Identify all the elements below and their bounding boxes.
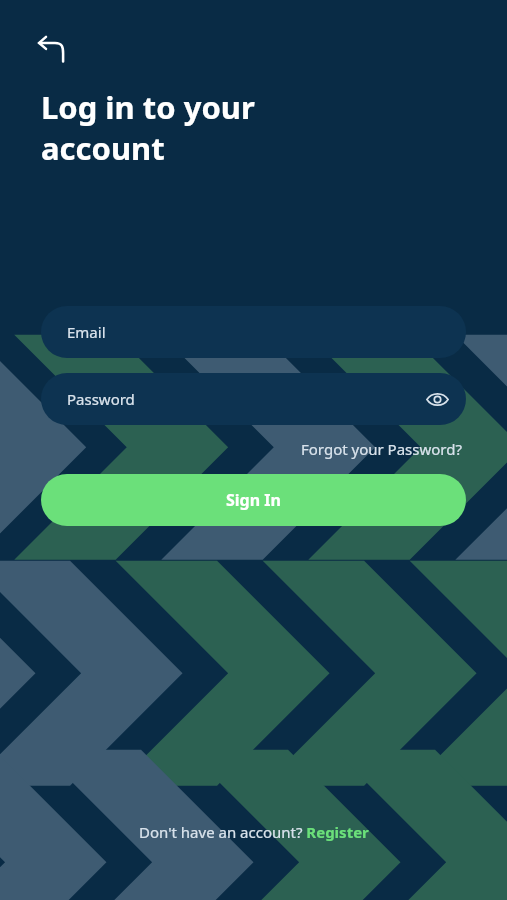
- staticText: Forgot your Password?: [301, 439, 462, 459]
- button[interactable]: Email: [41, 306, 466, 358]
- button[interactable]: Password: [41, 373, 466, 425]
- staticText: Don't have an account? Register: [139, 822, 369, 842]
- staticText: Sign In: [226, 489, 281, 511]
- staticText: Email: [67, 322, 106, 342]
- staticText: Password: [67, 389, 135, 409]
- button[interactable]: Don't have an account? Register: [0, 816, 507, 848]
- button[interactable]: Forgot your Password?: [297, 435, 466, 463]
- button[interactable]: Back: [28, 24, 76, 72]
- button[interactable]: Sign In: [41, 474, 466, 526]
- button[interactable]: Show password: [418, 380, 456, 418]
- staticText: Log in to your account: [41, 86, 255, 169]
